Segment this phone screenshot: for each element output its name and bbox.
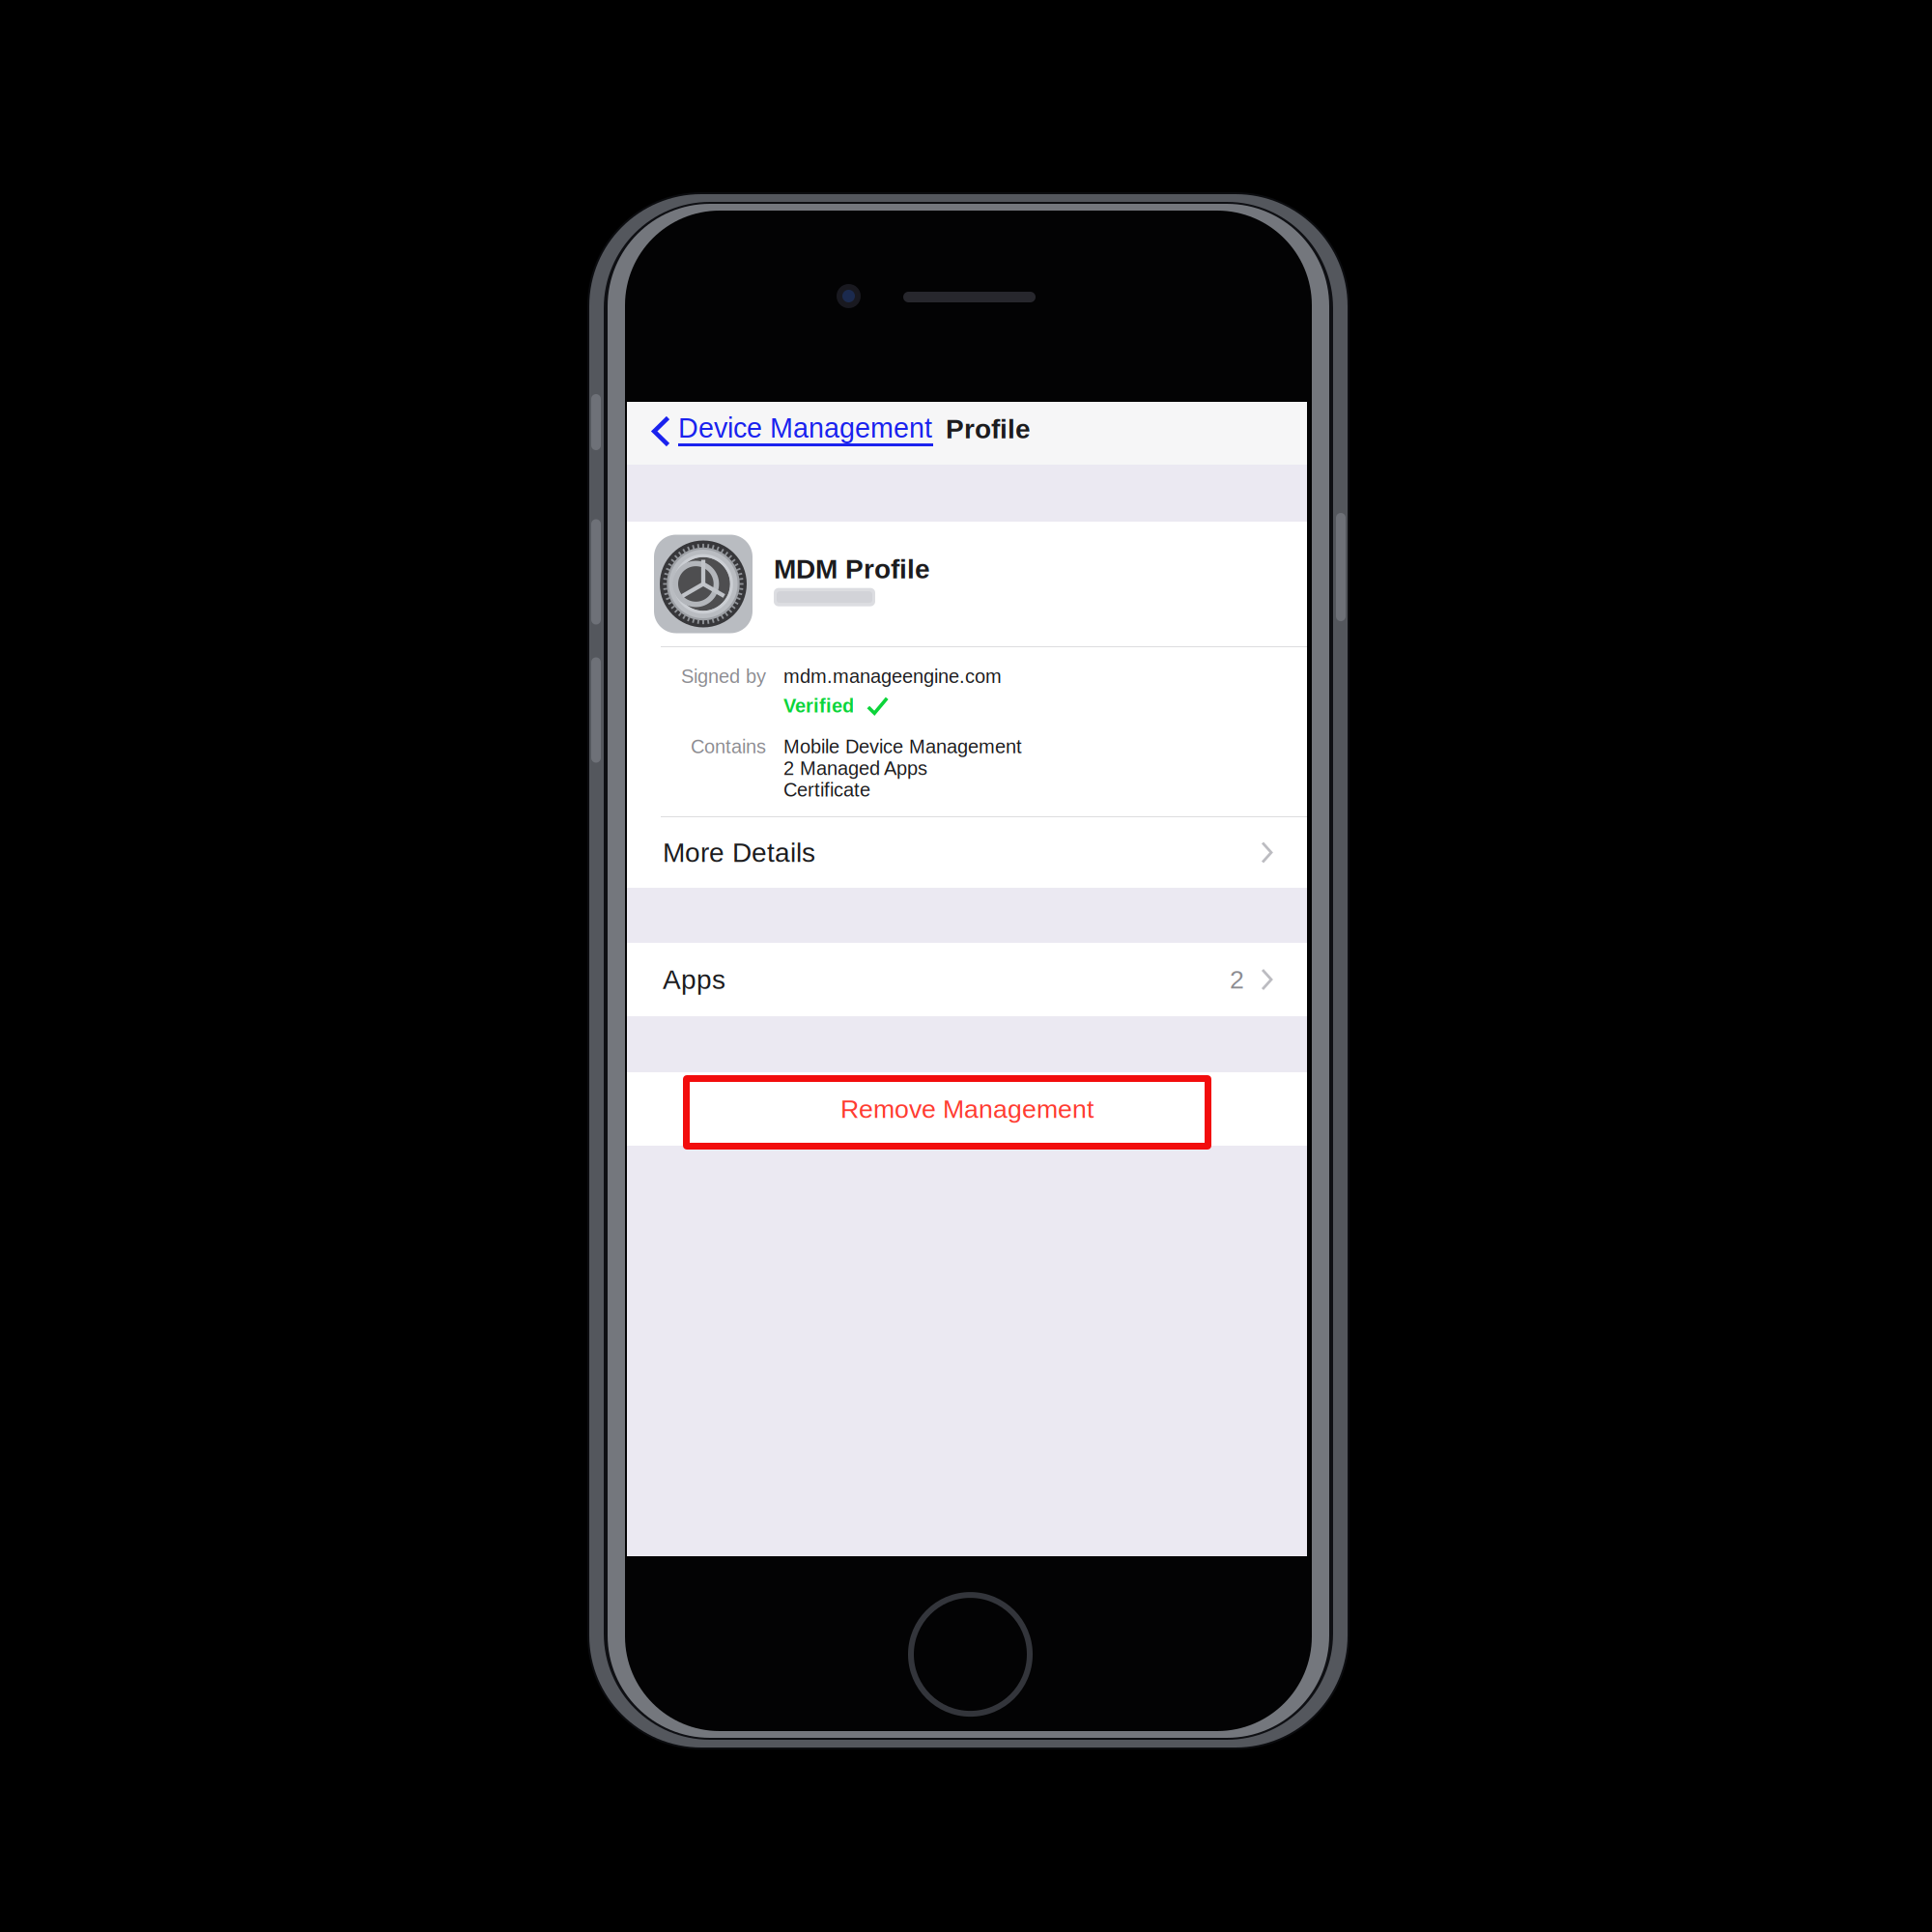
staticText: Mobile Device Management <box>783 736 1022 757</box>
button[interactable]: Device Management <box>627 402 933 465</box>
staticText: 2 <box>1230 965 1244 994</box>
staticText: Verified <box>783 695 854 716</box>
staticText: Contains <box>691 736 766 757</box>
staticText: Signed by <box>681 666 766 687</box>
staticText: Certificate <box>783 779 870 801</box>
staticText: mdm.manageengine.com <box>783 666 1002 687</box>
staticText: Device Management <box>678 412 932 443</box>
staticText: More Details <box>663 837 815 868</box>
staticText: Apps <box>663 964 725 995</box>
button[interactable]: Remove Management <box>627 1072 1307 1146</box>
staticText: MDM Profile <box>774 554 930 584</box>
button[interactable]: Apps <box>627 943 1307 1016</box>
staticText: Profile <box>946 414 1031 444</box>
button[interactable]: More Details <box>627 817 1307 888</box>
staticText: Remove Management <box>840 1095 1094 1123</box>
staticText: 2 Managed Apps <box>783 757 927 779</box>
